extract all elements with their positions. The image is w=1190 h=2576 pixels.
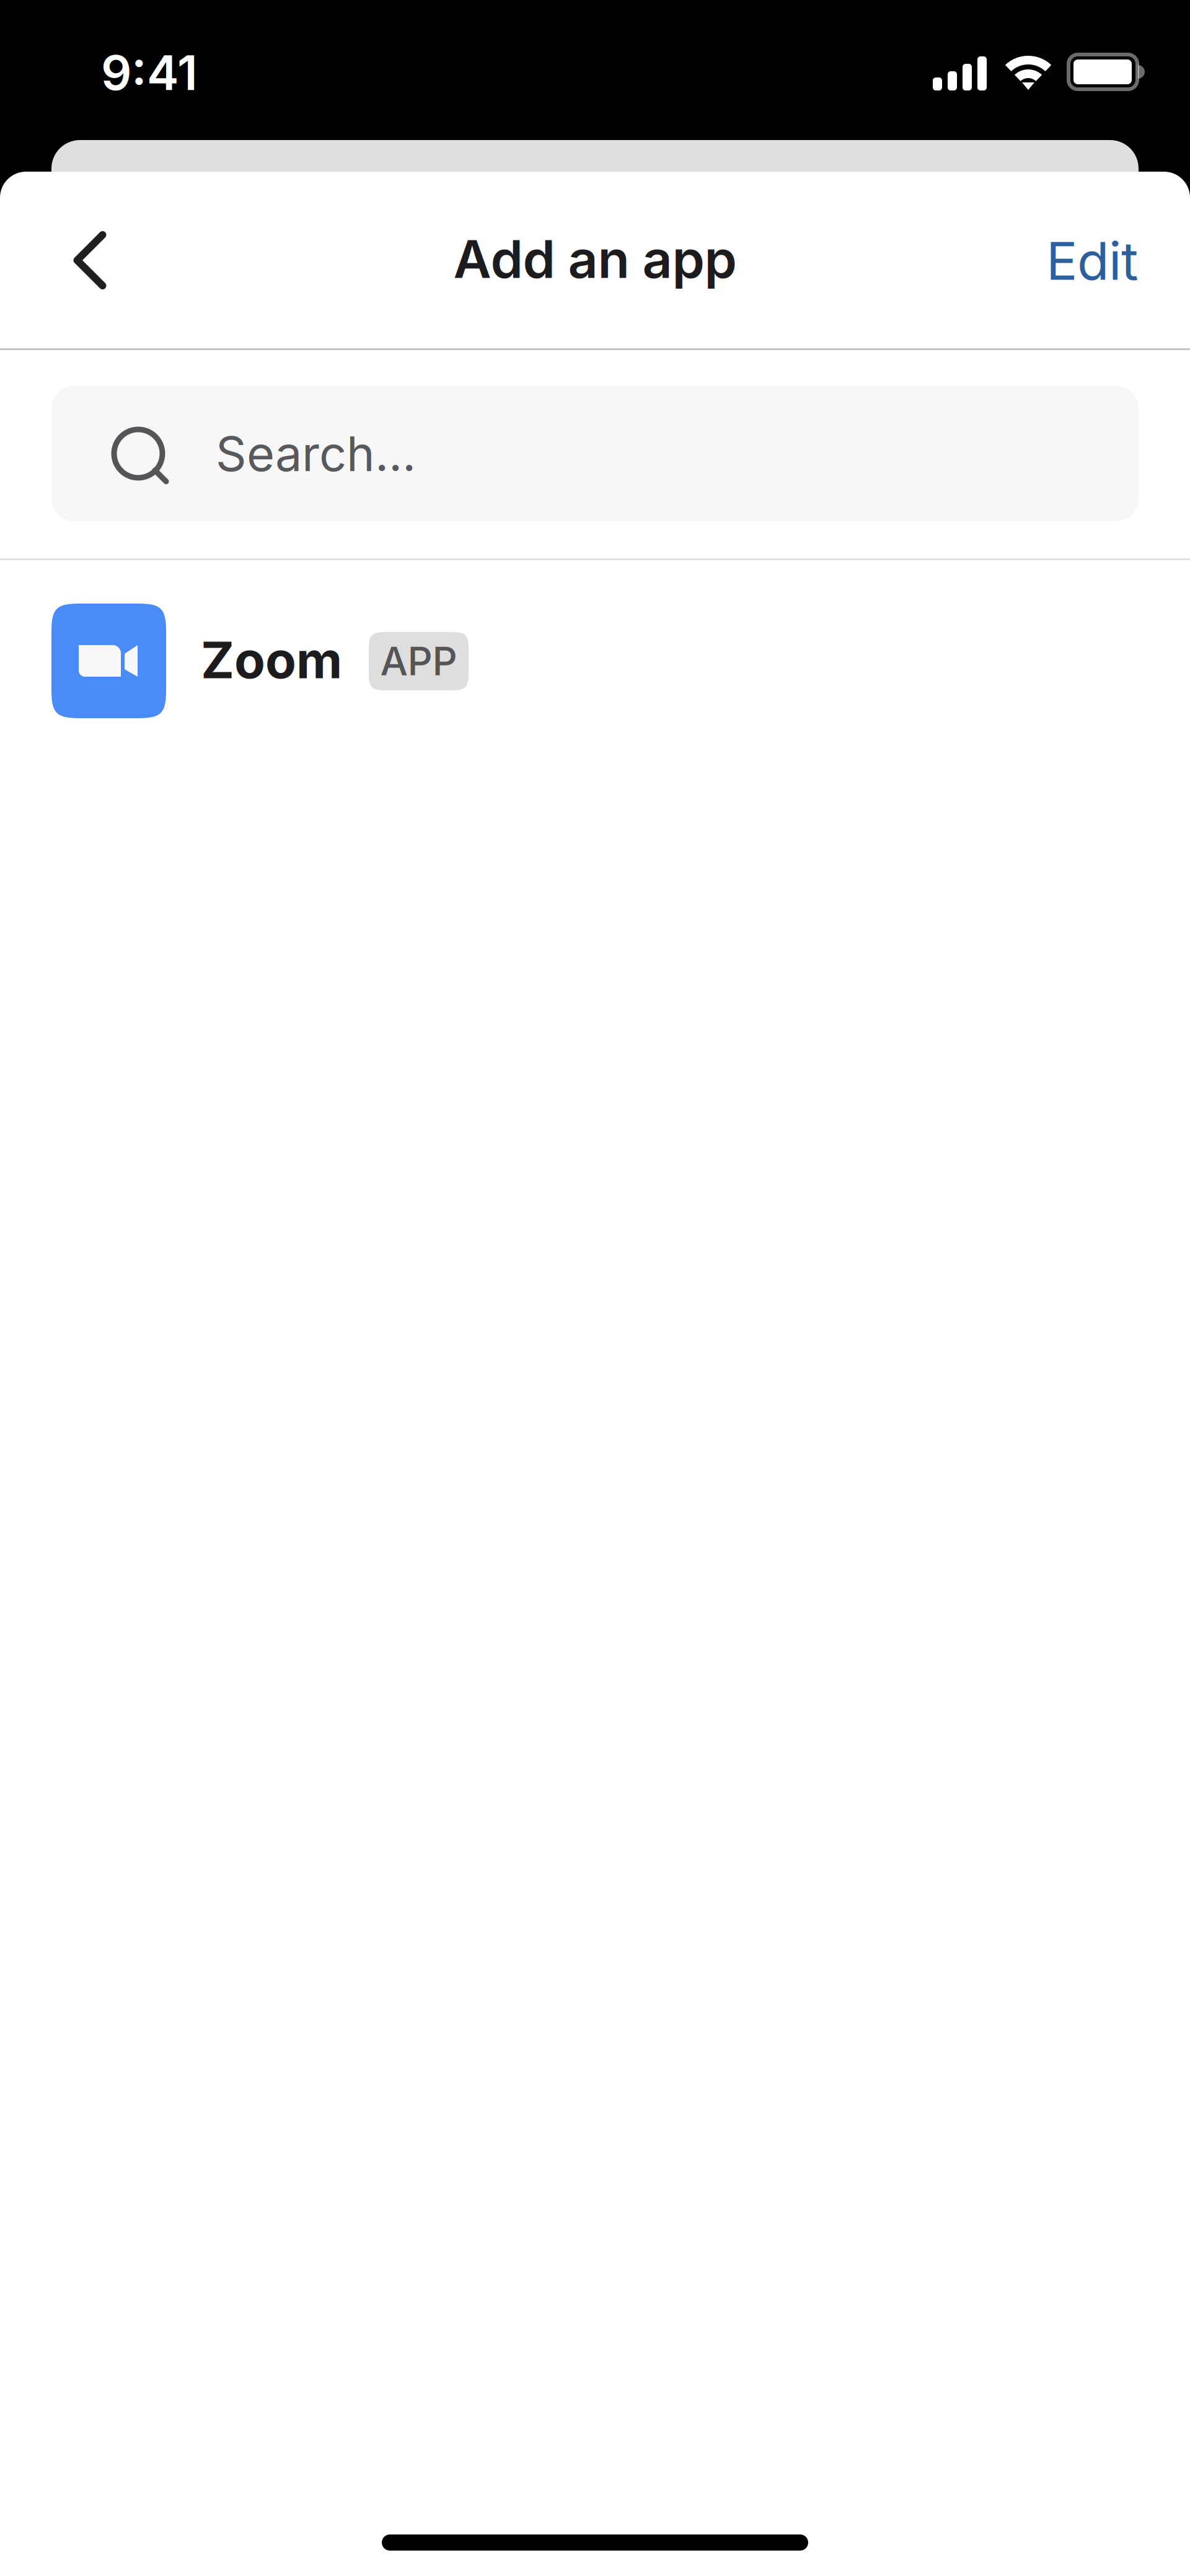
- button[interactable]: Zoom: [0, 604, 1190, 718]
- staticText: Zoom: [201, 629, 342, 690]
- button[interactable]: Edit: [989, 214, 1138, 307]
- staticText: APP: [380, 638, 457, 685]
- staticText: 9:41: [101, 44, 198, 102]
- button[interactable]: Search...: [51, 386, 1139, 521]
- staticText: Edit: [1046, 229, 1138, 292]
- button[interactable]: Back: [43, 214, 136, 307]
- staticText: Search...: [216, 425, 416, 483]
- staticText: Add an app: [453, 228, 737, 291]
